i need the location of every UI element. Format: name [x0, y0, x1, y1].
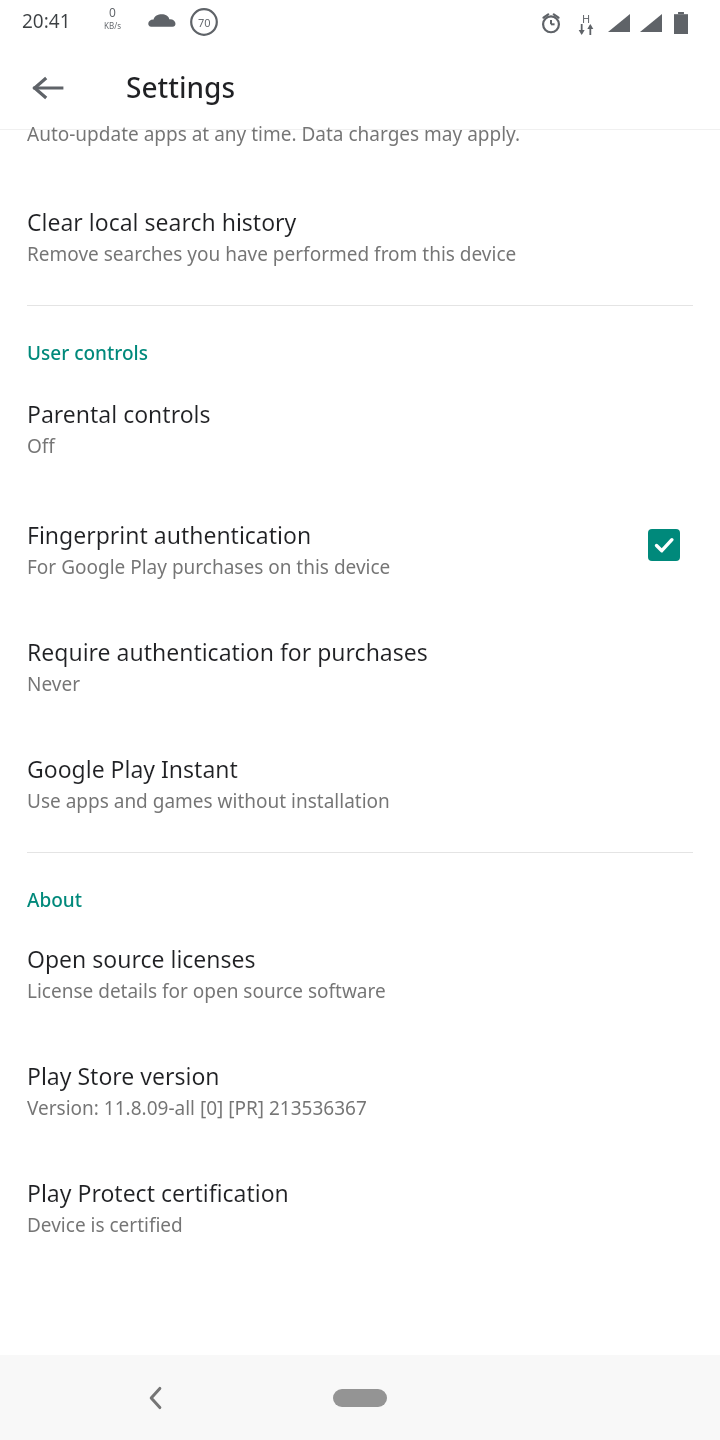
button[interactable]: Clear local search history	[0, 156, 720, 267]
button[interactable]: Back	[122, 1364, 190, 1432]
staticText: Fingerprint authentication	[27, 519, 312, 550]
staticText: Open source licenses	[27, 943, 256, 974]
button[interactable]: Back	[14, 54, 82, 122]
staticText: Require authentication for purchases	[27, 636, 428, 667]
staticText: KB/s	[104, 20, 121, 31]
button[interactable]: Fingerprint authentication enabled	[648, 529, 680, 561]
staticText: Clear local search history	[27, 206, 297, 237]
staticText: Parental controls	[27, 398, 211, 429]
staticText: For Google Play purchases on this device	[27, 554, 391, 580]
staticText: Device is certified	[27, 1212, 183, 1238]
staticText: User controls	[27, 340, 148, 366]
staticText: Auto-update apps at any time. Data charg…	[27, 121, 521, 147]
button[interactable]: Parental controls	[0, 366, 720, 459]
staticText: H	[582, 11, 591, 26]
staticText: Remove searches you have performed from …	[27, 241, 517, 267]
button[interactable]: Play Protect certification	[0, 1121, 720, 1238]
staticText: Settings	[126, 68, 236, 106]
button[interactable]: Require authentication for purchases	[0, 580, 720, 697]
staticText: Version: 11.8.09-all [0] [PR] 213536367	[27, 1095, 367, 1121]
staticText: Google Play Instant	[27, 753, 238, 784]
button[interactable]: Open source licenses	[0, 913, 720, 1004]
button[interactable]: Play Store version	[0, 1004, 720, 1121]
staticText: About	[27, 887, 83, 913]
button[interactable]: Home	[333, 1389, 387, 1407]
button[interactable]: Google Play Instant	[0, 697, 720, 814]
staticText: Off	[27, 433, 55, 459]
staticText: 20:41	[22, 8, 71, 34]
button[interactable]: Fingerprint authentication	[0, 459, 720, 580]
staticText: Never	[27, 671, 80, 697]
staticText: 0	[109, 4, 116, 20]
staticText: Play Store version	[27, 1060, 220, 1091]
staticText: License details for open source software	[27, 978, 386, 1004]
staticText: Use apps and games without installation	[27, 788, 390, 814]
staticText: Play Protect certification	[27, 1177, 289, 1208]
staticText: 70	[198, 15, 211, 30]
